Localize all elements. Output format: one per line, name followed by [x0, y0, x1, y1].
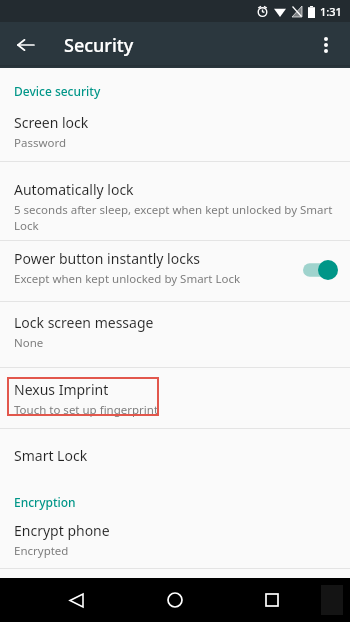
button[interactable]: Screen lock — [0, 113, 350, 158]
button[interactable]: Power button instantly locks toggle — [302, 260, 338, 280]
staticText: 5 seconds after sleep, except when kept … — [14, 202, 333, 233]
button[interactable]: Back — [10, 29, 42, 61]
staticText: Device security — [14, 83, 101, 99]
staticText: Except when kept unlocked by Smart Lock — [14, 271, 241, 287]
staticText: Security — [64, 33, 134, 58]
button[interactable]: Back — [56, 580, 96, 620]
button[interactable]: More options — [310, 29, 342, 61]
button[interactable]: Home — [155, 580, 195, 620]
staticText: Lock screen message — [14, 313, 154, 332]
staticText: Smart Lock — [14, 446, 88, 465]
button[interactable]: Recent apps — [252, 580, 292, 620]
staticText: 1:31 — [320, 4, 342, 19]
staticText: Power button instantly locks — [14, 249, 201, 268]
staticText: Touch to set up fingerprint — [14, 402, 159, 418]
button[interactable]: Automatically lock — [0, 180, 350, 236]
staticText: Password — [14, 135, 67, 151]
staticText: Encrypted — [14, 543, 69, 559]
button[interactable]: Nexus Imprint — [0, 380, 350, 425]
button[interactable]: Lock screen message — [0, 313, 350, 358]
staticText: Encryption — [14, 494, 76, 510]
button[interactable]: Encrypt phone — [0, 521, 350, 566]
staticText: Screen lock — [14, 113, 89, 132]
button[interactable]: Power button instantly locks — [0, 249, 350, 299]
staticText: None — [14, 335, 44, 351]
staticText: Encrypt phone — [14, 521, 110, 540]
button[interactable]: Smart Lock — [0, 437, 350, 473]
staticText: Nexus Imprint — [14, 380, 109, 399]
staticText: Automatically lock — [14, 180, 134, 199]
